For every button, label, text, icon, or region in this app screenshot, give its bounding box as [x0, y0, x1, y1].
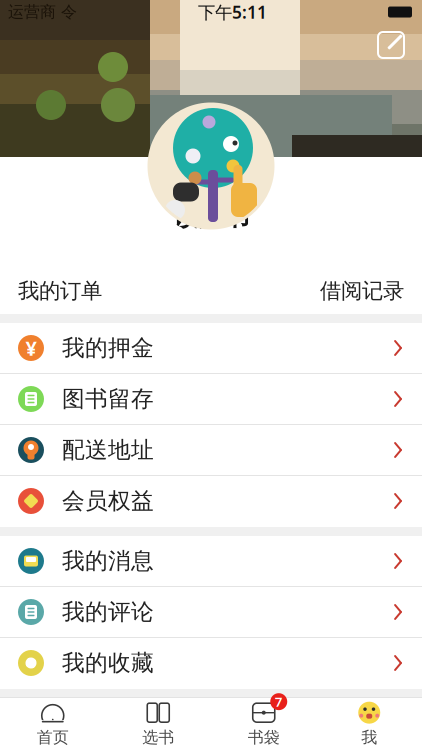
staticText: 运营商 令 — [8, 2, 77, 22]
staticText: 我的收藏 — [62, 649, 154, 677]
button[interactable]: 我的收藏 — [0, 638, 422, 689]
staticText: 图书留存 — [62, 385, 154, 413]
staticText: 我的订单 — [18, 278, 102, 304]
staticText: 下午5:11 — [198, 0, 267, 23]
button[interactable]: 我的消息 — [0, 536, 422, 587]
button[interactable]: 首页 — [0, 698, 105, 750]
staticText: 我 — [361, 728, 377, 747]
button[interactable]: 图书留存 — [0, 374, 422, 425]
staticText: 我的评论 — [62, 598, 154, 626]
button[interactable]: 借阅记录 — [320, 268, 422, 314]
staticText: 书袋 — [248, 728, 280, 747]
staticText: 读好书 — [173, 201, 248, 232]
staticText: 我的押金 — [62, 334, 154, 362]
button[interactable]: 我 — [316, 698, 422, 750]
button[interactable]: ¥ — [0, 323, 422, 374]
staticText: 我的消息 — [62, 547, 154, 575]
button[interactable]: 我的订单 — [0, 268, 102, 314]
staticText: 借阅记录 — [320, 278, 404, 304]
button[interactable]: 选书 — [105, 698, 211, 750]
button[interactable]: 我的评论 — [0, 587, 422, 638]
button[interactable]: 配送地址 — [0, 425, 422, 476]
staticText: ¥ — [25, 335, 36, 361]
staticText: 会员权益 — [62, 487, 154, 515]
staticText: 首页 — [37, 728, 69, 747]
staticText: 选书 — [142, 728, 174, 747]
button[interactable]: 7 — [211, 698, 316, 750]
staticText: 配送地址 — [62, 436, 154, 464]
staticText: 7 — [275, 693, 283, 710]
button[interactable]: 编辑资料 — [374, 28, 422, 62]
button[interactable]: 会员权益 — [0, 476, 422, 527]
